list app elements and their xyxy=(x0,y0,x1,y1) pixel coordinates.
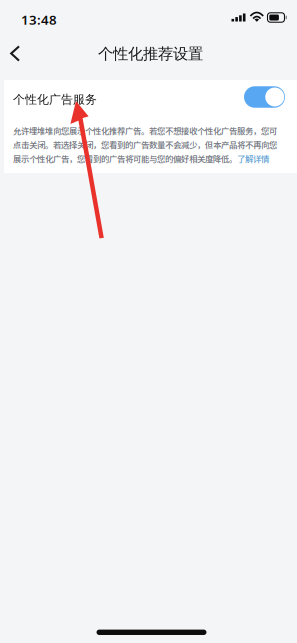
staticText: 展示个性化广告，您看到的广告将可能与您的偏好相关度降低。 xyxy=(13,152,237,165)
button[interactable]: 返回 xyxy=(4,35,38,69)
staticText: 13:48 xyxy=(21,11,57,28)
button[interactable]: 了解详情 xyxy=(237,152,269,165)
staticText: 个性化广告服务 xyxy=(13,92,97,107)
button[interactable]: 个性化广告服务 xyxy=(4,80,297,117)
staticText: 允许埋堆堆向您展示个性化推荐广告。若您不想接收个性化广告服务，您可 xyxy=(13,124,277,137)
staticText: 点击关闭。若选择关闭，您看到的广告数量不会减少，但本产品将不再向您 xyxy=(13,138,277,151)
staticText: 了解详情 xyxy=(237,152,269,165)
staticText: 个性化推荐设置 xyxy=(98,44,203,64)
